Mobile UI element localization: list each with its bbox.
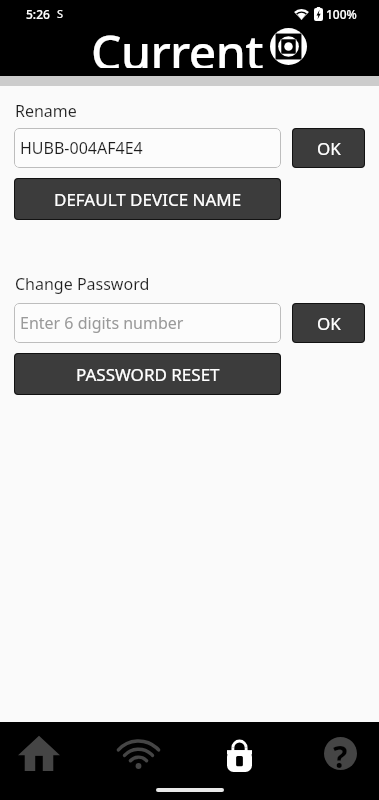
button[interactable]: DEFAULT DEVICE NAME bbox=[14, 178, 281, 220]
staticText: OK bbox=[317, 137, 341, 160]
button[interactable]: OK bbox=[292, 303, 365, 343]
staticText: OK bbox=[317, 312, 341, 335]
button[interactable]: Lock bbox=[189, 722, 284, 778]
staticText: Rename bbox=[15, 100, 77, 122]
staticText: Enter 6 digits number bbox=[20, 312, 184, 334]
button[interactable]: HUBB-004AF4E4 bbox=[14, 128, 281, 168]
staticText: Change Password bbox=[15, 273, 150, 295]
staticText: Current bbox=[91, 19, 264, 68]
button[interactable]: PASSWORD RESET bbox=[14, 353, 281, 395]
staticText: HUBB-004AF4E4 bbox=[20, 137, 143, 159]
staticText: S bbox=[57, 6, 64, 21]
button[interactable]: OK bbox=[292, 128, 365, 168]
button[interactable]: Help bbox=[284, 722, 379, 778]
button[interactable]: Enter 6 digits number bbox=[14, 303, 281, 343]
staticText: ? bbox=[333, 737, 348, 769]
staticText: DEFAULT DEVICE NAME bbox=[54, 188, 242, 211]
staticText: 100% bbox=[326, 6, 357, 22]
button[interactable]: Wi-Fi bbox=[94, 722, 189, 778]
staticText: PASSWORD RESET bbox=[76, 363, 220, 386]
button[interactable]: Home bbox=[0, 722, 94, 778]
staticText: 5:26 bbox=[26, 6, 50, 22]
